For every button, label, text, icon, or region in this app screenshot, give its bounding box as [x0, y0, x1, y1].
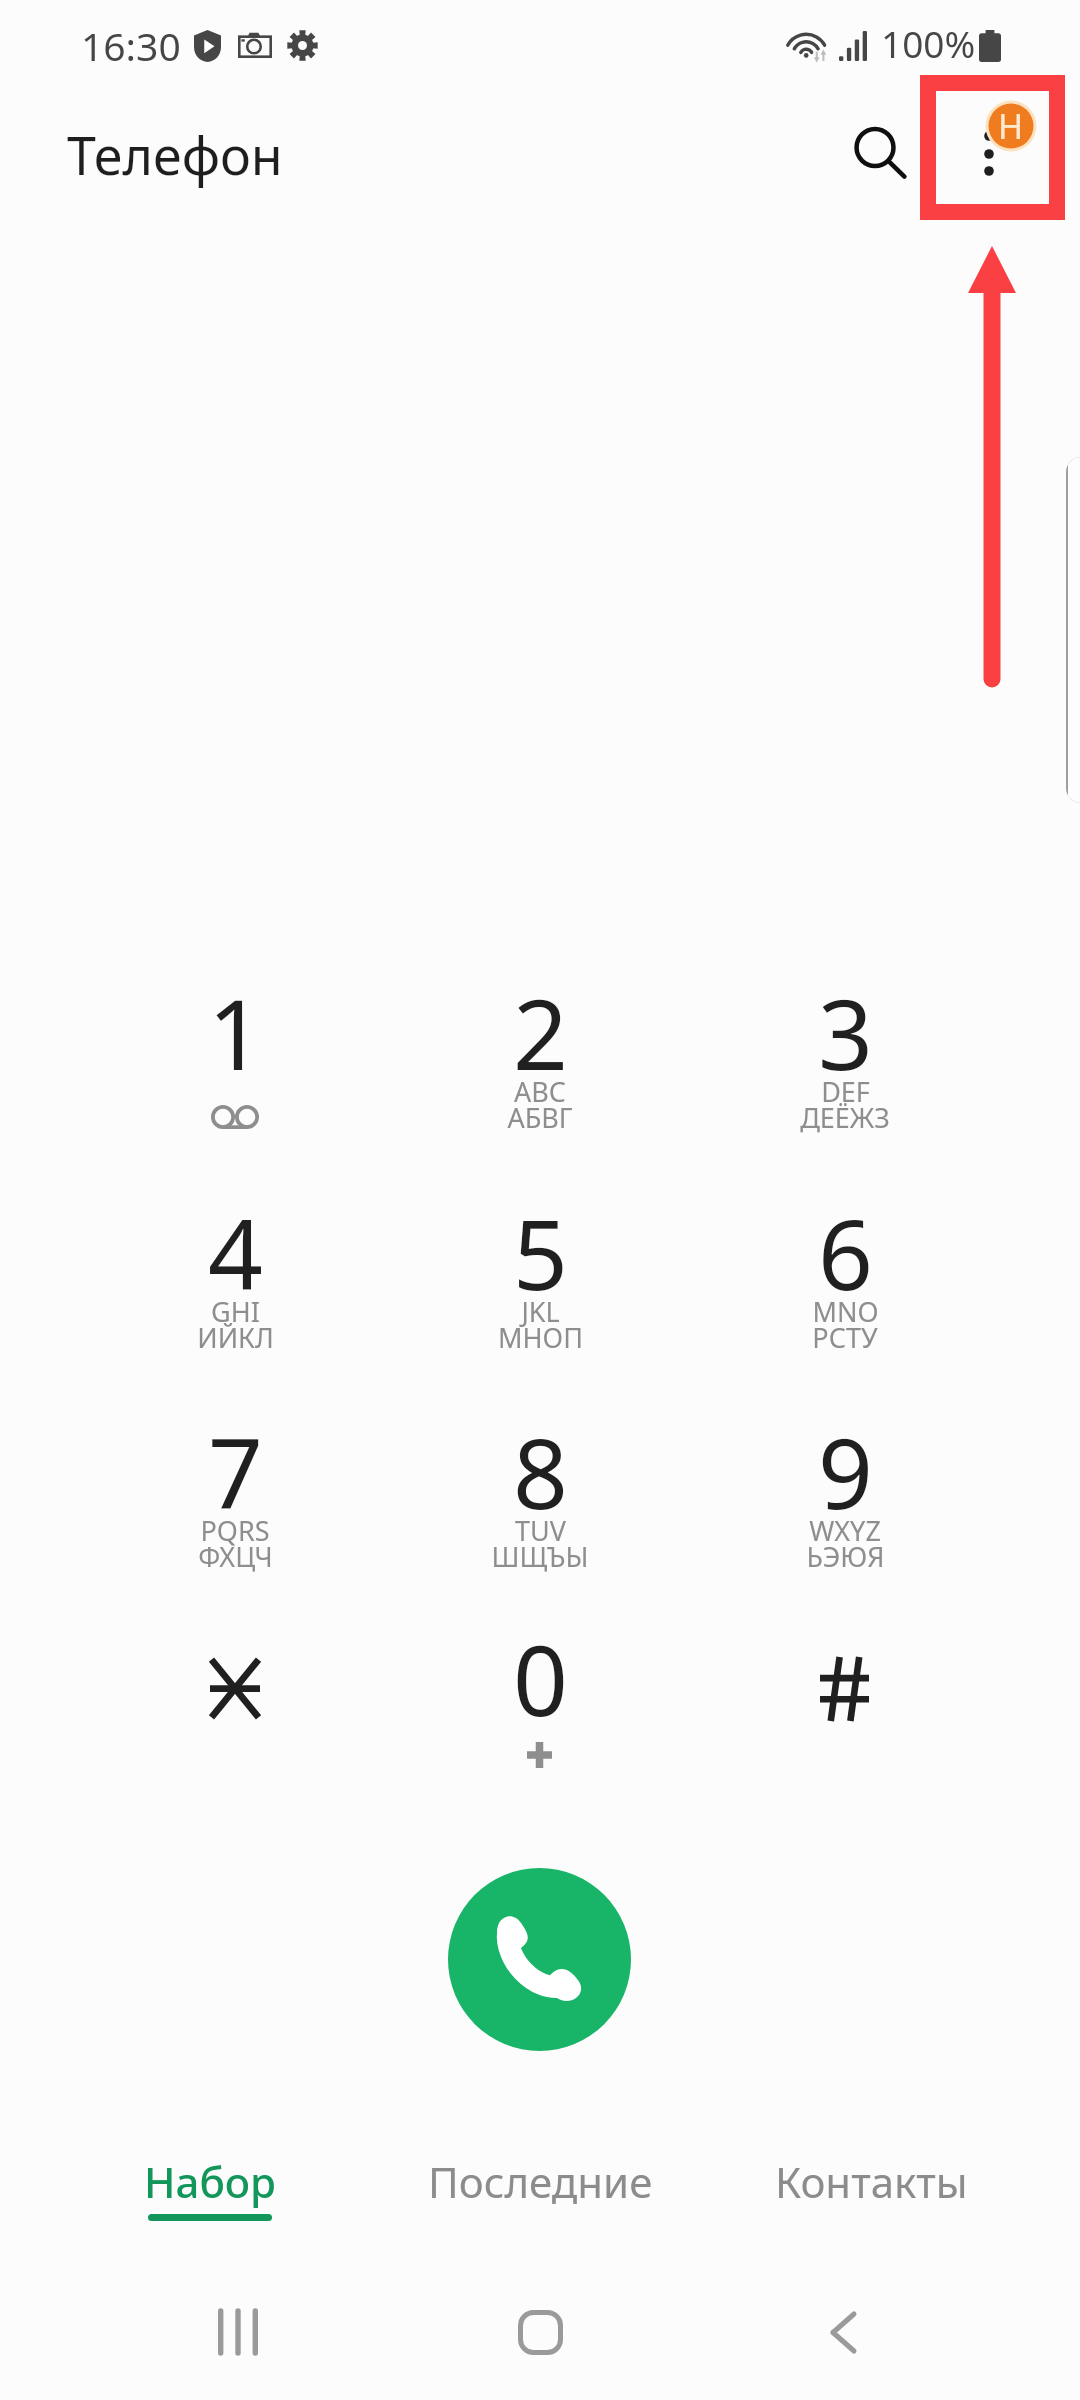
button[interactable]: 5: [400, 1174, 680, 1364]
button[interactable]: 7: [95, 1393, 375, 1583]
button[interactable]: Набор: [50, 2153, 370, 2273]
button[interactable]: 8: [400, 1393, 680, 1583]
staticText: РСТУ: [812, 1319, 878, 1356]
staticText: АБВГ: [507, 1099, 573, 1136]
button[interactable]: More options: [935, 94, 1045, 204]
button[interactable]: Star: [95, 1600, 375, 1790]
button[interactable]: 3: [705, 954, 985, 1144]
staticText: Контакты: [775, 2153, 968, 2210]
staticText: 16:30: [81, 19, 181, 72]
button[interactable]: 9: [705, 1393, 985, 1583]
staticText: H: [998, 103, 1024, 149]
staticText: МНОП: [498, 1319, 583, 1356]
button[interactable]: Back: [783, 2272, 903, 2392]
button[interactable]: Search: [820, 94, 930, 204]
staticText: 6: [818, 1187, 873, 1318]
staticText: 1: [208, 967, 263, 1098]
staticText: 0: [513, 1613, 568, 1744]
staticText: ДЕЁЖЗ: [800, 1099, 890, 1136]
button[interactable]: 1: [95, 954, 375, 1144]
staticText: ABC: [514, 1073, 566, 1110]
staticText: 3: [818, 967, 873, 1098]
staticText: 2: [513, 967, 568, 1098]
staticText: ИЙКЛ: [197, 1319, 274, 1356]
staticText: PQRS: [200, 1512, 270, 1549]
button[interactable]: Home: [480, 2272, 600, 2392]
staticText: Последние: [428, 2153, 653, 2210]
button[interactable]: Pound: [705, 1600, 985, 1790]
staticText: 5: [513, 1187, 568, 1318]
staticText: 7: [208, 1406, 263, 1537]
staticText: ШЩЪЫ: [491, 1538, 589, 1575]
staticText: WXYZ: [809, 1512, 881, 1549]
button[interactable]: 6: [705, 1174, 985, 1364]
staticText: Набор: [144, 2153, 276, 2210]
staticText: DEF: [821, 1073, 870, 1110]
button[interactable]: 4: [95, 1174, 375, 1364]
staticText: TUV: [515, 1512, 566, 1549]
staticText: JKL: [521, 1293, 560, 1330]
button[interactable]: Recents: [178, 2272, 298, 2392]
button[interactable]: 0: [400, 1600, 680, 1790]
staticText: ФХЦЧ: [198, 1538, 273, 1575]
button[interactable]: Контакты: [711, 2153, 1031, 2273]
staticText: 4: [208, 1187, 263, 1318]
staticText: 100%: [881, 18, 976, 68]
staticText: MNO: [812, 1293, 879, 1330]
staticText: GHI: [211, 1293, 260, 1330]
button[interactable]: Последние: [380, 2153, 700, 2273]
button[interactable]: 2: [400, 954, 680, 1144]
staticText: ЬЭЮЯ: [806, 1538, 885, 1575]
staticText: Телефон: [67, 119, 283, 190]
staticText: 8: [513, 1406, 568, 1537]
staticText: 9: [818, 1406, 873, 1537]
button[interactable]: Call: [448, 1868, 631, 2051]
